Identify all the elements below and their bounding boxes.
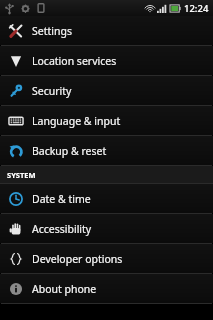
staticText: Security: [32, 84, 72, 98]
staticText: SYSTEM: [7, 170, 36, 180]
button[interactable]: Date & time: [0, 184, 213, 213]
button[interactable]: Accessibility: [0, 214, 213, 243]
staticText: Accessibility: [32, 222, 92, 236]
staticText: Language & input: [32, 114, 121, 128]
staticText: Settings: [32, 24, 72, 38]
button[interactable]: Backup & reset: [0, 136, 213, 165]
button[interactable]: Location services: [0, 46, 213, 75]
button[interactable]: About phone: [0, 274, 213, 303]
button[interactable]: Security: [0, 76, 213, 105]
button[interactable]: Settings: [0, 16, 213, 45]
staticText: About phone: [32, 282, 97, 296]
staticText: Backup & reset: [32, 144, 107, 158]
staticText: Date & time: [32, 192, 91, 206]
staticText: Developer options: [32, 252, 123, 266]
staticText: 12:24: [184, 2, 209, 15]
button[interactable]: Language & input: [0, 106, 213, 135]
button[interactable]: Developer options: [0, 244, 213, 273]
staticText: Location services: [32, 54, 117, 68]
